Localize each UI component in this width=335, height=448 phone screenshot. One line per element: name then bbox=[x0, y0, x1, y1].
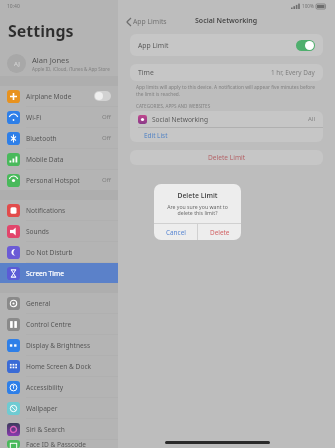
staticText: Settings bbox=[8, 20, 74, 42]
staticText: Do Not Disturb bbox=[26, 248, 111, 257]
staticText: Wi-Fi bbox=[26, 113, 102, 122]
staticText: Are you sure you want to delete this lim… bbox=[162, 203, 233, 217]
button[interactable]: Edit List bbox=[130, 128, 323, 142]
button[interactable]: Accessibility bbox=[0, 377, 118, 397]
staticText: Off bbox=[102, 176, 111, 184]
staticText: CATEGORIES, APPS AND WEBSITES bbox=[136, 103, 211, 109]
staticText: Delete bbox=[210, 228, 230, 237]
staticText: 100% bbox=[302, 3, 314, 9]
staticText: Siri & Search bbox=[26, 425, 111, 434]
staticText: Bluetooth bbox=[26, 134, 102, 143]
staticText: Accessibility bbox=[26, 383, 111, 392]
staticText: Edit List bbox=[144, 131, 168, 140]
button[interactable]: Personal Hotspot bbox=[0, 170, 118, 190]
staticText: Personal Hotspot bbox=[26, 176, 102, 185]
button[interactable]: Siri & Search bbox=[0, 419, 118, 439]
button[interactable]: Time bbox=[130, 64, 323, 81]
button[interactable]: App Limit toggle bbox=[296, 40, 315, 51]
button[interactable]: App Limit bbox=[130, 34, 323, 56]
button[interactable]: Mobile Data bbox=[0, 149, 118, 169]
staticText: General bbox=[26, 299, 111, 308]
staticText: Delete Limit bbox=[208, 153, 246, 162]
staticText: Off bbox=[102, 113, 111, 121]
button[interactable]: App Limits bbox=[118, 14, 173, 29]
staticText: Display & Brightness bbox=[26, 341, 111, 350]
button[interactable]: AJ bbox=[0, 50, 118, 76]
button[interactable]: Face ID & Passcode bbox=[0, 440, 118, 448]
button[interactable]: Bluetooth bbox=[0, 128, 118, 148]
staticText: 10:40 bbox=[7, 3, 20, 10]
staticText: Cancel bbox=[166, 228, 186, 237]
staticText: Time bbox=[138, 68, 271, 77]
button[interactable]: General bbox=[0, 293, 118, 313]
staticText: Social Networking bbox=[195, 16, 258, 26]
staticText: App limits will apply to this device. A … bbox=[136, 84, 317, 97]
staticText: App Limits bbox=[133, 17, 167, 26]
button[interactable]: Cancel bbox=[154, 224, 197, 240]
staticText: Social Networking bbox=[152, 115, 308, 124]
button[interactable]: Display & Brightness bbox=[0, 335, 118, 355]
staticText: Control Centre bbox=[26, 320, 111, 329]
button[interactable]: Screen Time bbox=[0, 263, 118, 283]
staticText: Home Screen & Dock bbox=[26, 362, 111, 371]
button[interactable]: Do Not Disturb bbox=[0, 242, 118, 262]
button[interactable]: Notifications bbox=[0, 200, 118, 220]
staticText: Apple ID, iCloud, iTunes & App Store bbox=[32, 66, 110, 72]
button[interactable]: Airplane Mode toggle bbox=[94, 91, 111, 101]
button[interactable]: Social Networking bbox=[130, 111, 323, 127]
button[interactable]: Sounds bbox=[0, 221, 118, 241]
button[interactable]: Wi-Fi bbox=[0, 107, 118, 127]
staticText: Face ID & Passcode bbox=[26, 440, 111, 448]
staticText: Mobile Data bbox=[26, 155, 111, 164]
staticText: Off bbox=[102, 134, 111, 142]
staticText: Delete Limit bbox=[154, 191, 241, 200]
staticText: App Limit bbox=[138, 41, 296, 50]
button[interactable]: Wallpaper bbox=[0, 398, 118, 418]
staticText: Airplane Mode bbox=[26, 92, 94, 101]
staticText: Wallpaper bbox=[26, 404, 111, 413]
staticText: Alan Jones bbox=[32, 55, 70, 65]
staticText: All bbox=[308, 115, 315, 123]
button[interactable]: Delete Limit bbox=[130, 150, 323, 165]
button[interactable]: Airplane Mode bbox=[0, 86, 118, 106]
staticText: Screen Time bbox=[26, 269, 111, 278]
staticText: AJ bbox=[14, 60, 20, 68]
staticText: Notifications bbox=[26, 206, 111, 215]
staticText: Sounds bbox=[26, 227, 111, 236]
button[interactable]: Control Centre bbox=[0, 314, 118, 334]
button[interactable]: Home Screen & Dock bbox=[0, 356, 118, 376]
staticText: 1 hr, Every Day bbox=[271, 68, 315, 77]
button[interactable]: Delete bbox=[198, 224, 241, 240]
